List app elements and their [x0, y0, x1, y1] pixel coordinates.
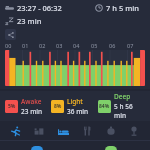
button[interactable]: Activity — [6, 121, 26, 141]
button[interactable]: Nutrition — [77, 121, 97, 141]
staticText: 36 min — [67, 107, 89, 116]
staticText: Awake — [21, 97, 42, 106]
staticText: 07 — [127, 42, 134, 49]
staticText: 05 — [91, 42, 98, 49]
staticText: 01 — [22, 42, 29, 49]
staticText: 8% — [54, 103, 62, 110]
staticText: Light — [67, 97, 83, 106]
button[interactable]: Steps — [29, 121, 49, 141]
button[interactable]: 5% — [5, 97, 51, 116]
button[interactable]: Weight — [101, 121, 121, 141]
button[interactable]: Sleep — [53, 121, 73, 141]
staticText: Deep — [114, 92, 131, 101]
staticText: 00 — [5, 42, 12, 49]
button[interactable] — [5, 50, 145, 86]
staticText: 23 min — [21, 107, 43, 116]
staticText: 7 h 5 min — [106, 3, 139, 13]
staticText: 03 — [56, 42, 63, 49]
button[interactable]: 8% — [51, 97, 98, 116]
staticText: 5 h 56 min — [114, 102, 145, 120]
staticText: 23:27 - 06:32 — [17, 3, 62, 13]
staticText: 02 — [39, 42, 46, 49]
staticText: 06 — [109, 42, 116, 49]
button[interactable]: 84% — [98, 92, 145, 120]
staticText: 5% — [8, 103, 16, 110]
button[interactable]: Hydration — [124, 121, 144, 141]
staticText: 84% — [99, 103, 110, 110]
button[interactable]: Share — [5, 29, 16, 40]
staticText: 23 min — [17, 16, 42, 26]
staticText: 04 — [73, 42, 80, 49]
